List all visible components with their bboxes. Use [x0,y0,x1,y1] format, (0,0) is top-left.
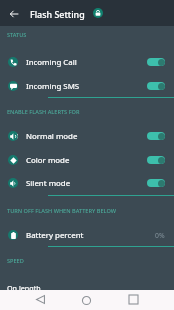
button[interactable]: Silent mode [0,171,174,195]
button[interactable]: Battery percent [0,224,174,246]
button[interactable]: Toggle [147,179,165,187]
button[interactable]: Toggle [147,58,165,66]
staticText: Incoming SMS [26,81,80,92]
button[interactable]: Back [30,289,50,309]
staticText: Silent mode [26,178,71,189]
staticText: STATUS [7,31,27,39]
button[interactable]: Toggle [147,82,165,90]
button[interactable]: Incoming Call [0,50,174,74]
staticText: Flash Setting [30,8,85,20]
button[interactable]: On length [7,283,174,297]
button[interactable]: Color mode [0,148,174,172]
button[interactable]: Back [4,4,24,24]
staticText: Normal mode [26,131,78,142]
staticText: On length [7,283,41,293]
staticText: 0% [155,231,165,240]
button[interactable]: Home [76,290,96,310]
staticText: Battery percent [26,230,84,241]
staticText: Incoming Call [26,57,77,68]
button[interactable]: Toggle [147,132,165,140]
staticText: TURN OFF FLASH WHEN BATTERY BELOW [7,207,116,215]
button[interactable]: Toggle [147,156,165,164]
button[interactable]: Incoming SMS [0,74,174,98]
button[interactable]: Recent apps [123,289,143,309]
button[interactable]: Normal mode [0,124,174,148]
staticText: Color mode [26,155,70,166]
button[interactable]: Unlock premium [93,8,103,18]
staticText: SPEED [7,257,24,265]
staticText: ENABLE FLASH ALERTS FOR [7,108,80,116]
